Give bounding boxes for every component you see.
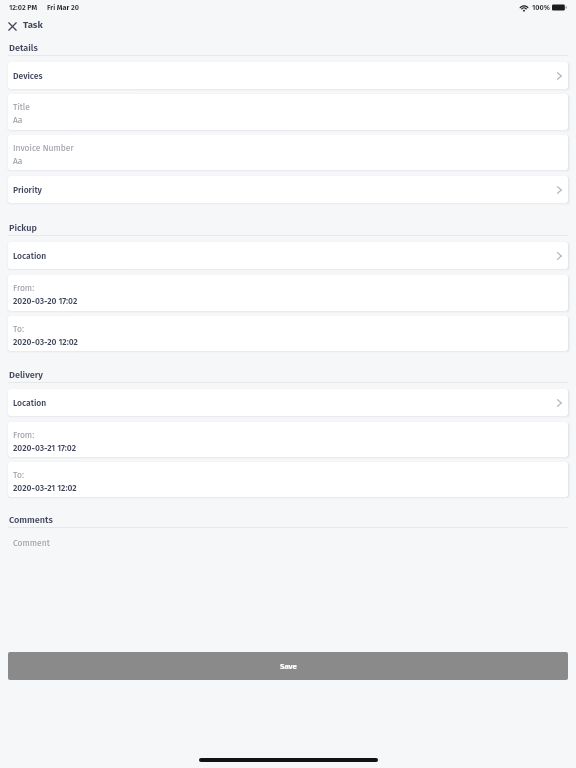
button[interactable]: Save xyxy=(8,652,568,680)
button[interactable]: Location xyxy=(8,389,568,416)
staticText: To: xyxy=(13,324,24,334)
staticText: Save xyxy=(280,662,297,671)
staticText: 2020-03-21 12:02 xyxy=(13,483,77,493)
staticText: Comment xyxy=(13,538,50,548)
button[interactable]: Priority xyxy=(8,176,568,203)
staticText: Pickup xyxy=(9,222,37,233)
button[interactable]: Devices xyxy=(8,62,568,89)
button[interactable]: From: xyxy=(8,422,568,457)
staticText: Invoice Number xyxy=(13,143,74,153)
staticText: 2020-03-21 17:02 xyxy=(13,443,77,453)
button[interactable]: To: xyxy=(8,316,568,351)
button[interactable]: Invoice Number xyxy=(8,135,568,170)
staticText: From: xyxy=(13,430,35,440)
staticText: 2020-03-20 12:02 xyxy=(13,337,78,347)
staticText: Details xyxy=(9,42,38,53)
staticText: 100% xyxy=(532,3,550,12)
button[interactable]: Close xyxy=(8,15,17,35)
staticText: Location xyxy=(13,398,47,408)
staticText: Priority xyxy=(13,185,42,195)
staticText: Task xyxy=(23,19,43,31)
staticText: 12:02 PM xyxy=(9,3,38,12)
staticText: Comments xyxy=(9,514,53,525)
staticText: Aa xyxy=(13,156,23,166)
button[interactable]: Title xyxy=(8,94,568,130)
staticText: Aa xyxy=(13,115,23,125)
staticText: 2020-03-20 17:02 xyxy=(13,296,78,306)
staticText: Devices xyxy=(13,71,43,81)
staticText: Fri Mar 20 xyxy=(47,3,79,12)
staticText: Delivery xyxy=(9,369,44,380)
button[interactable]: Location xyxy=(8,242,568,269)
button[interactable]: From: xyxy=(8,275,568,311)
staticText: Title xyxy=(13,102,30,112)
staticText: Location xyxy=(13,251,47,261)
button[interactable]: To: xyxy=(8,462,568,497)
staticText: From: xyxy=(13,283,35,293)
staticText: To: xyxy=(13,470,24,480)
